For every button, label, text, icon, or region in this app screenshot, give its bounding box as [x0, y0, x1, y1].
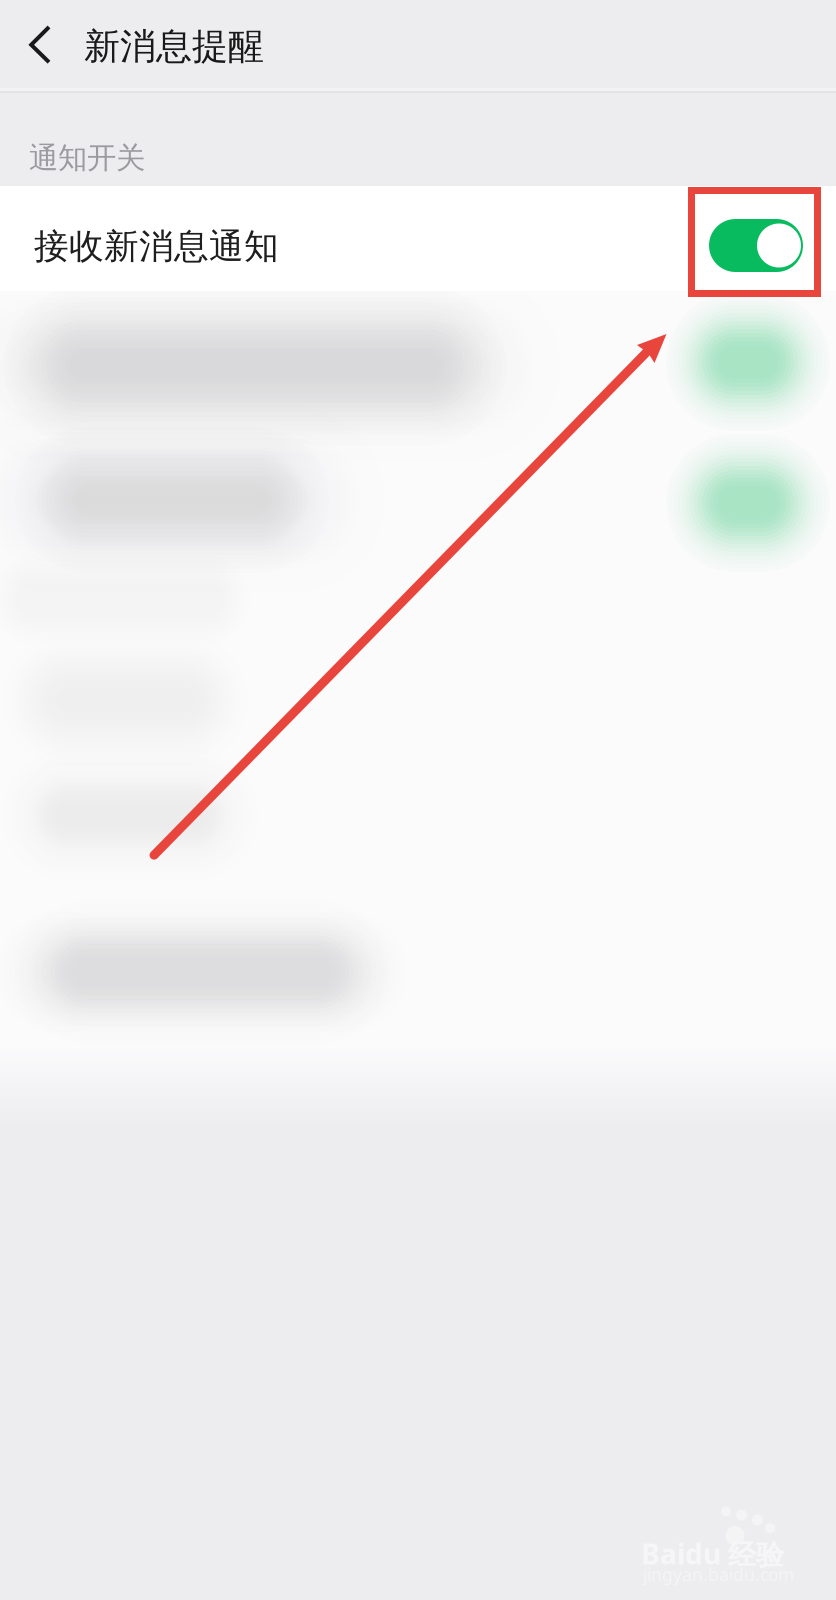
staticText: 通知开关	[29, 140, 145, 176]
staticText: 接收新消息通知	[34, 225, 279, 268]
button[interactable]: 接收新消息通知	[0, 186, 836, 291]
button[interactable]: Back	[0, 0, 84, 93]
staticText: Baidu 经验	[641, 1535, 784, 1572]
staticText: 新消息提醒	[84, 24, 264, 69]
